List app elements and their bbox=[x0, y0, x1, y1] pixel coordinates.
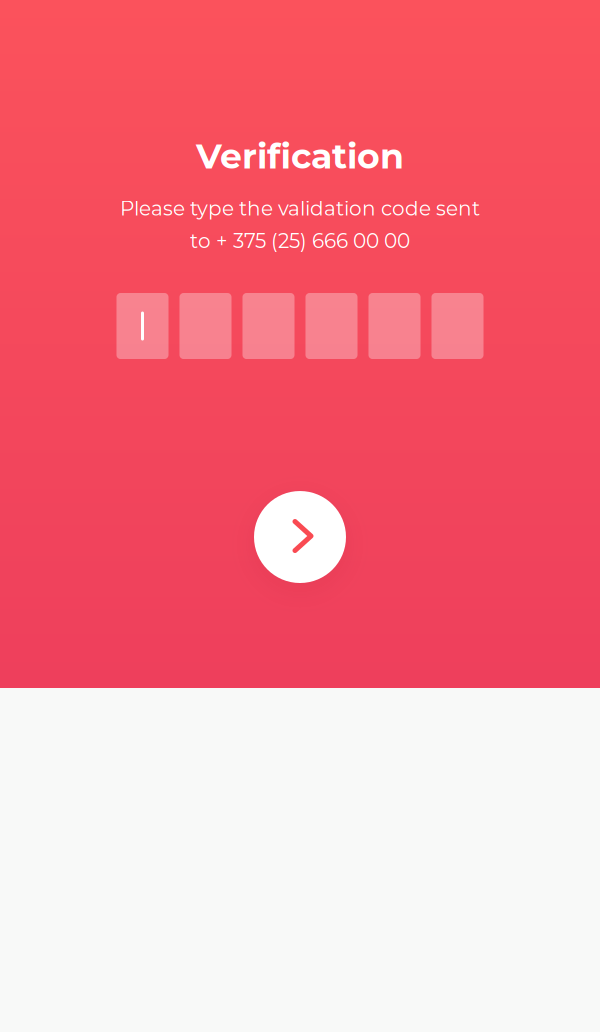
button[interactable]: Code digit bbox=[179, 293, 231, 359]
button[interactable]: Continue bbox=[254, 491, 346, 583]
button[interactable]: Code digit bbox=[305, 293, 357, 359]
button[interactable]: Code digit bbox=[242, 293, 294, 359]
button[interactable]: Code digit 1, editing bbox=[116, 293, 168, 359]
staticText: Please type the validation code sent bbox=[120, 196, 480, 221]
staticText: to + 375 (25) 666 00 00 bbox=[190, 229, 410, 253]
button[interactable]: Code digit bbox=[368, 293, 420, 359]
button[interactable]: Code digit bbox=[431, 293, 483, 359]
staticText: Verification bbox=[196, 135, 404, 177]
